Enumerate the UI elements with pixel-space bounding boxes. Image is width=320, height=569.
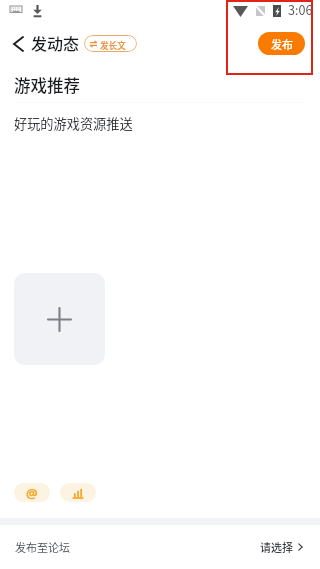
button[interactable]: Add image bbox=[14, 273, 105, 365]
staticText: 发动态 bbox=[31, 31, 80, 54]
staticText: 发布至论坛 bbox=[15, 539, 70, 555]
button[interactable]: 发布至论坛 bbox=[0, 525, 320, 569]
button[interactable]: 发长文 bbox=[84, 35, 137, 52]
staticText: 3:06 bbox=[288, 0, 313, 18]
staticText: 发布 bbox=[271, 36, 293, 52]
button[interactable]: Back bbox=[6, 28, 30, 60]
button[interactable]: Mention bbox=[14, 483, 50, 502]
staticText: 请选择 bbox=[260, 539, 293, 555]
button[interactable]: 发布 bbox=[258, 32, 305, 55]
button[interactable]: Poll bbox=[60, 483, 96, 502]
staticText: 发长文 bbox=[100, 39, 126, 51]
staticText: 好玩的游戏资源推送 bbox=[14, 114, 133, 133]
staticText: 游戏推荐 bbox=[14, 73, 80, 97]
staticText: @ bbox=[26, 484, 38, 502]
